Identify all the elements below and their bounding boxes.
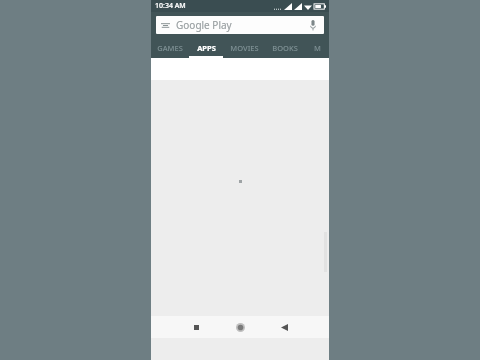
- staticText: Google Play: [176, 18, 232, 32]
- button[interactable]: APPS: [189, 38, 223, 58]
- button[interactable]: M: [305, 38, 329, 58]
- button[interactable]: GAMES: [151, 38, 189, 58]
- button[interactable]: Google Play: [156, 16, 324, 34]
- button[interactable]: BOOKS: [265, 38, 305, 58]
- staticText: M: [314, 43, 321, 53]
- staticText: MOVIES: [230, 43, 259, 53]
- staticText: GAMES: [157, 43, 183, 53]
- staticText: 10:34 AM: [155, 1, 186, 11]
- button[interactable]: MOVIES: [223, 38, 265, 58]
- button[interactable]: Voice search: [307, 19, 319, 31]
- button[interactable]: Back: [262, 316, 306, 338]
- staticText: BOOKS: [272, 43, 298, 53]
- staticText: APPS: [197, 43, 216, 53]
- button[interactable]: Home: [218, 316, 262, 338]
- button[interactable]: Recent apps: [174, 316, 218, 338]
